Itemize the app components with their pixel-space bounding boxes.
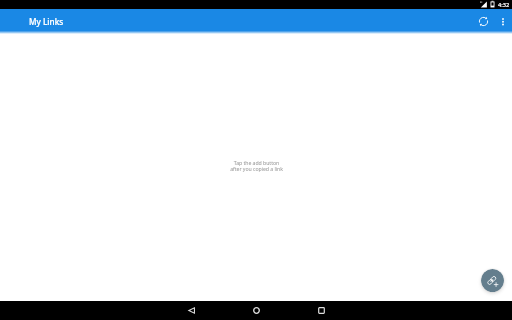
button[interactable]: Back bbox=[181, 301, 201, 320]
button[interactable]: Add link bbox=[481, 269, 504, 292]
button[interactable]: Refresh bbox=[472, 9, 494, 31]
staticText: 4:32 bbox=[498, 1, 510, 9]
staticText: Tap the add button after you copied a li… bbox=[230, 159, 283, 173]
button[interactable]: Home bbox=[246, 301, 266, 320]
staticText: My Links bbox=[29, 16, 64, 27]
button[interactable]: More options bbox=[494, 11, 512, 29]
button[interactable]: Recents bbox=[311, 301, 331, 320]
